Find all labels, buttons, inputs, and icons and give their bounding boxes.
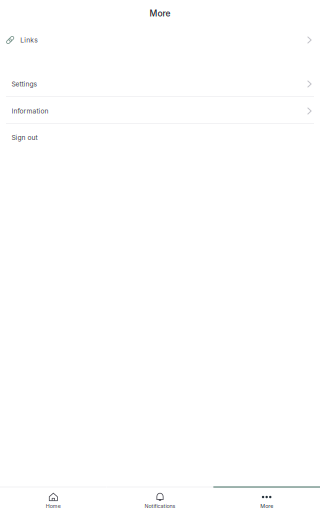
button[interactable]: Home <box>0 486 107 512</box>
staticText: Links <box>20 36 38 44</box>
staticText: Settings <box>11 80 37 88</box>
button[interactable]: Notifications <box>107 486 213 512</box>
staticText: Notifications <box>144 503 175 509</box>
staticText: More <box>149 8 170 19</box>
staticText: Sign out <box>11 133 37 142</box>
staticText: More <box>260 503 273 509</box>
button[interactable]: Settings <box>0 70 320 96</box>
button[interactable]: Information <box>0 97 320 123</box>
button[interactable]: Links <box>0 27 320 53</box>
button[interactable]: More <box>213 486 320 512</box>
staticText: Home <box>46 503 61 509</box>
button[interactable]: Sign out <box>0 124 320 150</box>
staticText: Information <box>11 107 48 115</box>
